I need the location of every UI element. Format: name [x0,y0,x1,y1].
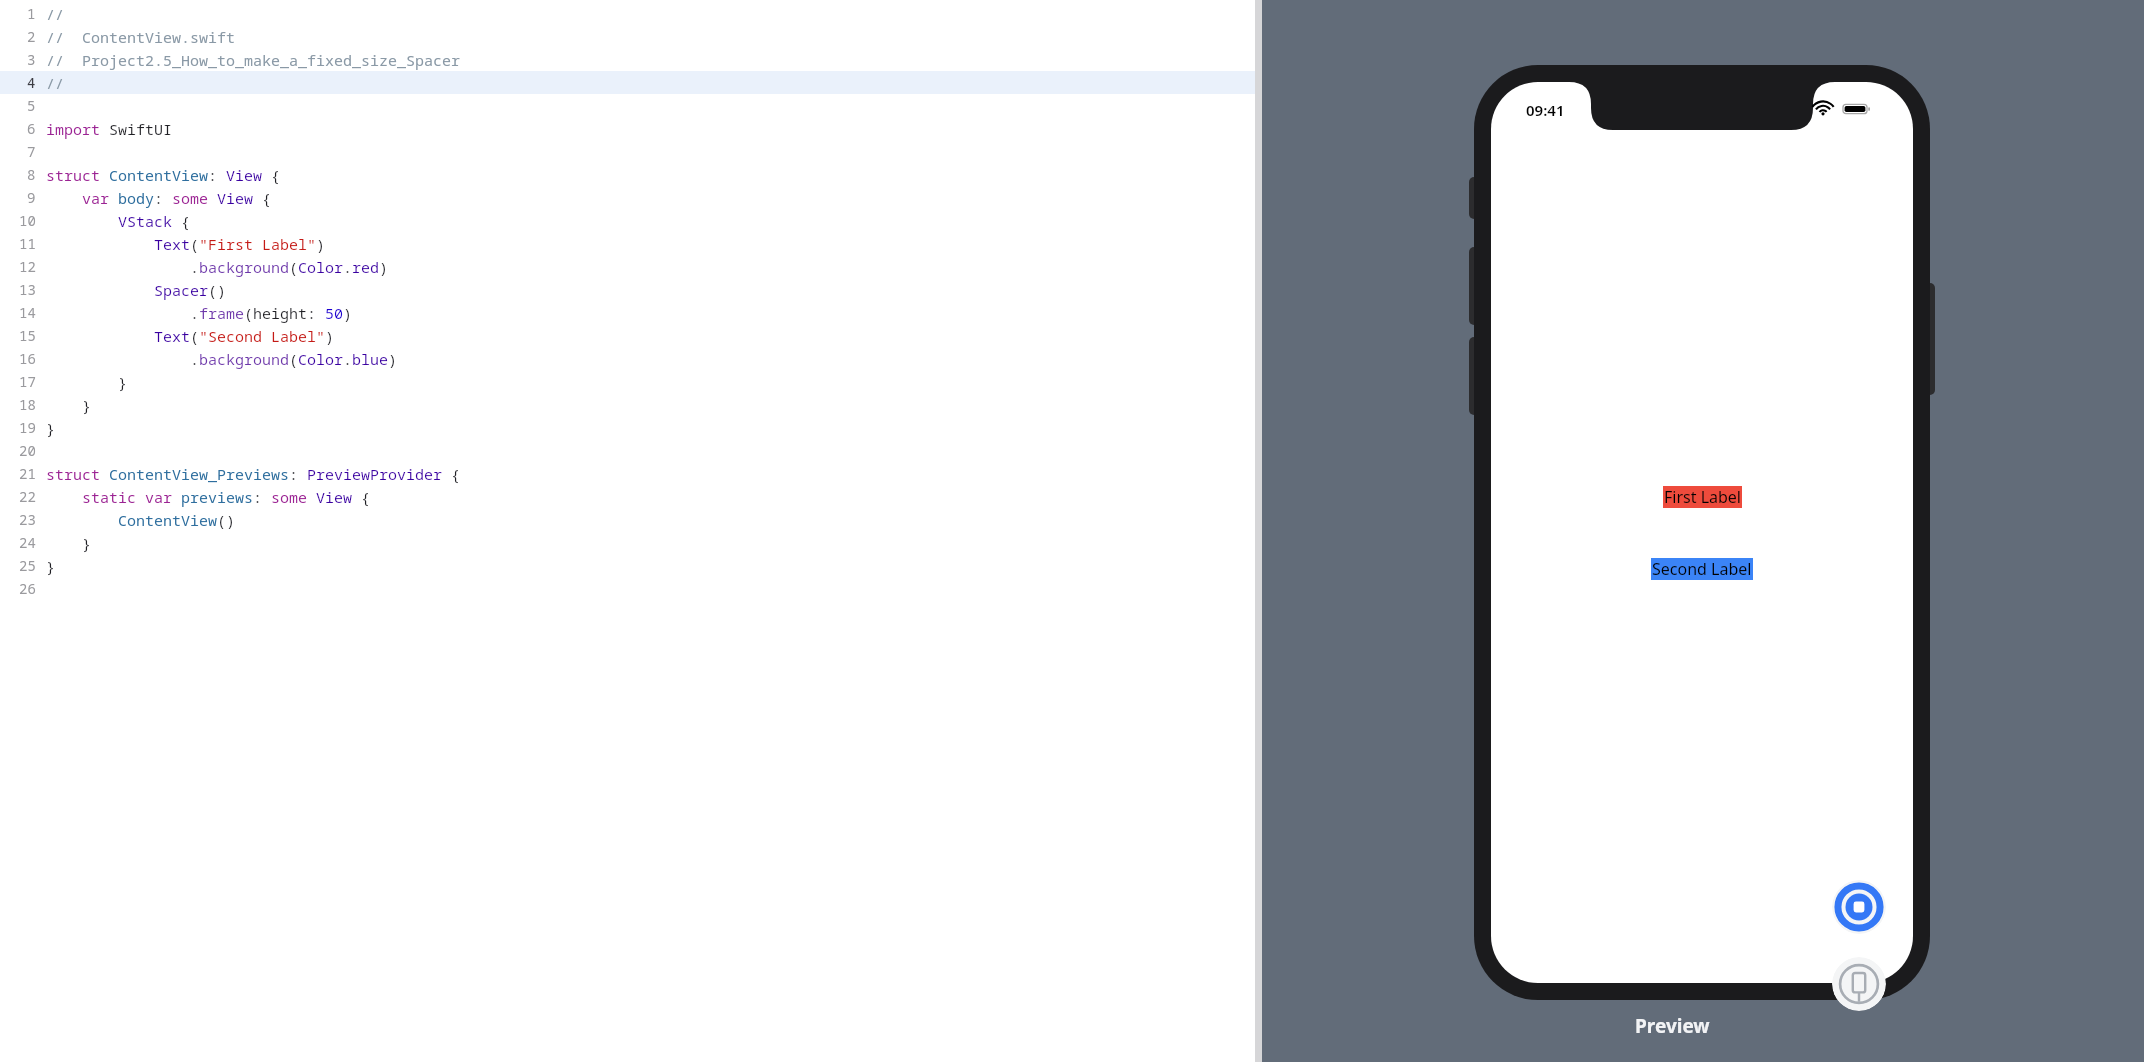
staticText: 13 [19,280,36,299]
staticText: 16 [19,349,36,368]
staticText: struct ContentView: View { [46,165,281,185]
staticText: First Label [1664,486,1741,508]
button[interactable]: Live Preview [1832,880,1886,934]
staticText: 15 [19,326,36,345]
staticText: } [46,395,92,415]
staticText: 09:41 [1526,100,1565,120]
staticText: } [46,418,56,438]
button[interactable]: Preview on Device [1832,957,1886,1011]
staticText: 4 [27,73,36,92]
staticText: .frame(height: 50) [46,303,353,323]
staticText: VStack { [46,211,191,231]
staticText: Second Label [1652,558,1752,580]
staticText: } [46,372,128,392]
staticText: 18 [19,395,36,414]
staticText: 19 [19,418,36,437]
staticText: 6 [27,119,36,138]
staticText: Text("Second Label") [46,326,335,346]
staticText: Spacer() [46,280,227,300]
staticText: static var previews: some View { [46,487,371,507]
staticText: 9 [27,188,36,207]
staticText: 23 [19,510,36,529]
staticText: import SwiftUI [46,119,173,139]
staticText: // [46,4,65,24]
staticText: .background(Color.blue) [46,349,398,369]
staticText: 22 [19,487,36,506]
staticText: 12 [19,257,36,276]
staticText: // ContentView.swift [46,27,236,47]
staticText: 1 [27,4,36,23]
staticText: var body: some View { [46,188,272,208]
staticText: } [46,556,56,576]
staticText: 17 [19,372,36,391]
staticText: // [46,73,65,93]
staticText: } [46,533,92,553]
staticText: 24 [19,533,36,552]
staticText: 21 [19,464,36,483]
staticText: 26 [19,579,36,598]
staticText: 7 [27,142,36,161]
staticText: 20 [19,441,36,460]
staticText: 11 [19,234,36,253]
button[interactable]: Second Label [1651,558,1753,580]
staticText: struct ContentView_Previews: PreviewProv… [46,464,461,484]
staticText: 25 [19,556,36,575]
staticText: .background(Color.red) [46,257,389,277]
staticText: Text("First Label") [46,234,326,254]
button[interactable]: First Label [1663,486,1742,508]
staticText: 8 [27,165,36,184]
staticText: 3 [27,50,36,69]
staticText: 2 [27,27,36,46]
staticText: Preview [1635,1013,1710,1039]
staticText: // Project2.5_How_to_make_a_fixed_size_S… [46,50,461,70]
staticText: ContentView() [46,510,236,530]
staticText: 10 [19,211,36,230]
staticText: 14 [19,303,36,322]
staticText: 5 [27,96,36,115]
